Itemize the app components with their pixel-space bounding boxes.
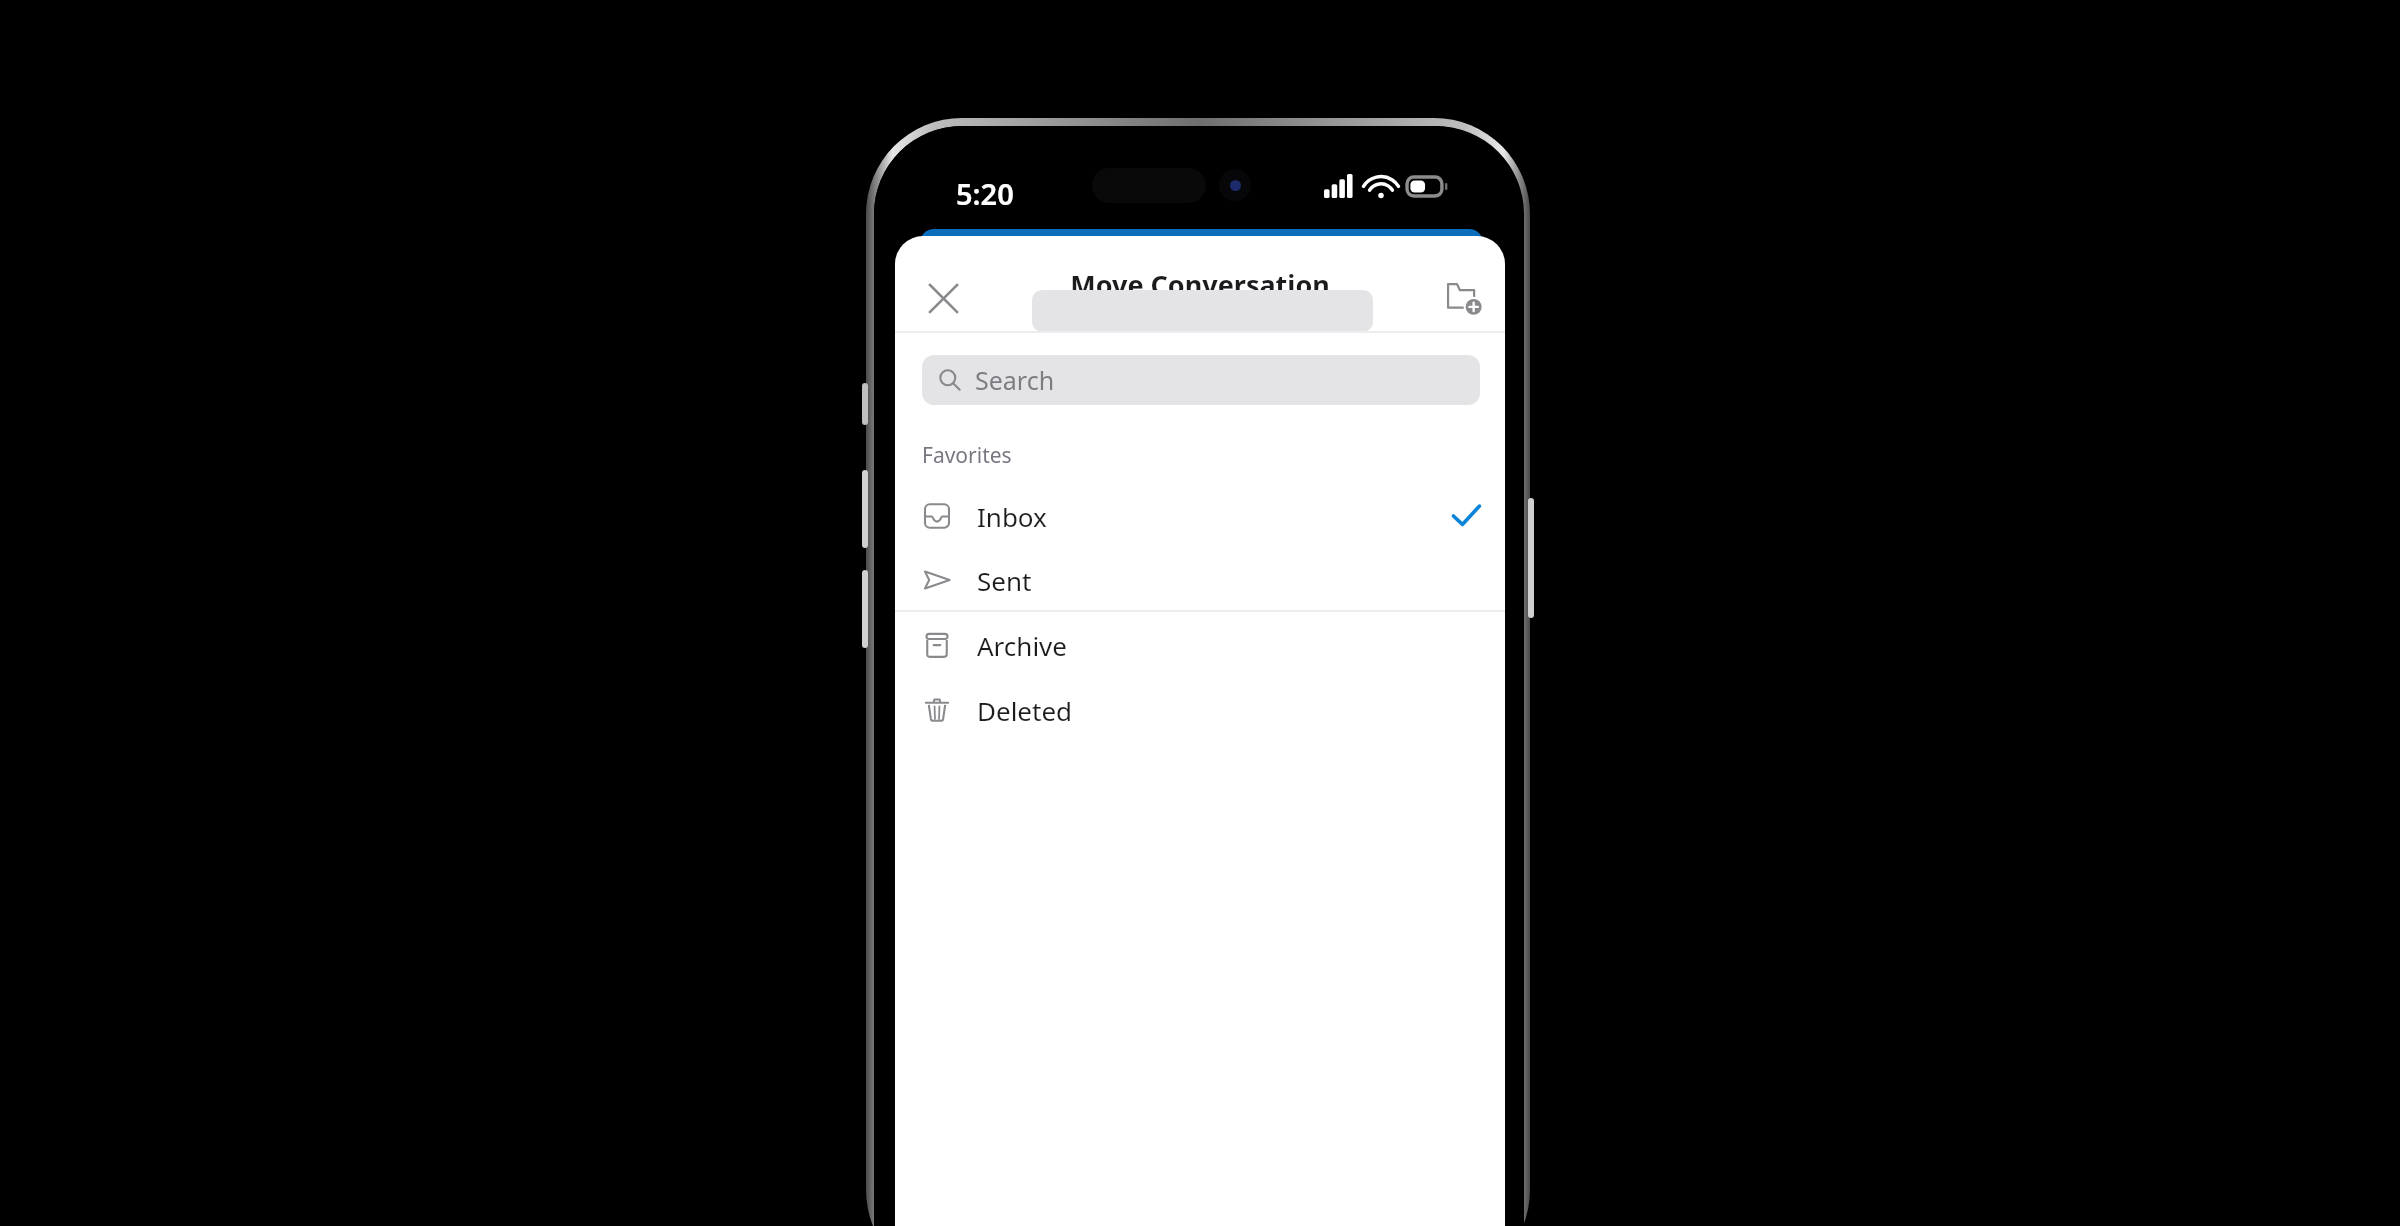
staticText: Sent xyxy=(977,563,1032,598)
button[interactable]: Sent xyxy=(895,548,1505,612)
staticText: Favorites xyxy=(922,441,1012,470)
button[interactable]: Inbox xyxy=(895,484,1505,548)
staticText: Move Conversation xyxy=(895,266,1505,303)
staticText: 5:20 xyxy=(956,174,1014,213)
staticText: Archive xyxy=(977,628,1067,663)
staticText: Deleted xyxy=(977,693,1073,728)
button[interactable]: Close xyxy=(917,272,969,324)
button[interactable]: Archive xyxy=(895,613,1505,677)
button[interactable]: Deleted xyxy=(895,678,1505,742)
button[interactable]: Search xyxy=(922,355,1480,405)
staticText: Inbox xyxy=(977,499,1047,534)
staticText: Search xyxy=(975,363,1055,397)
button[interactable]: New folder xyxy=(1435,269,1491,325)
